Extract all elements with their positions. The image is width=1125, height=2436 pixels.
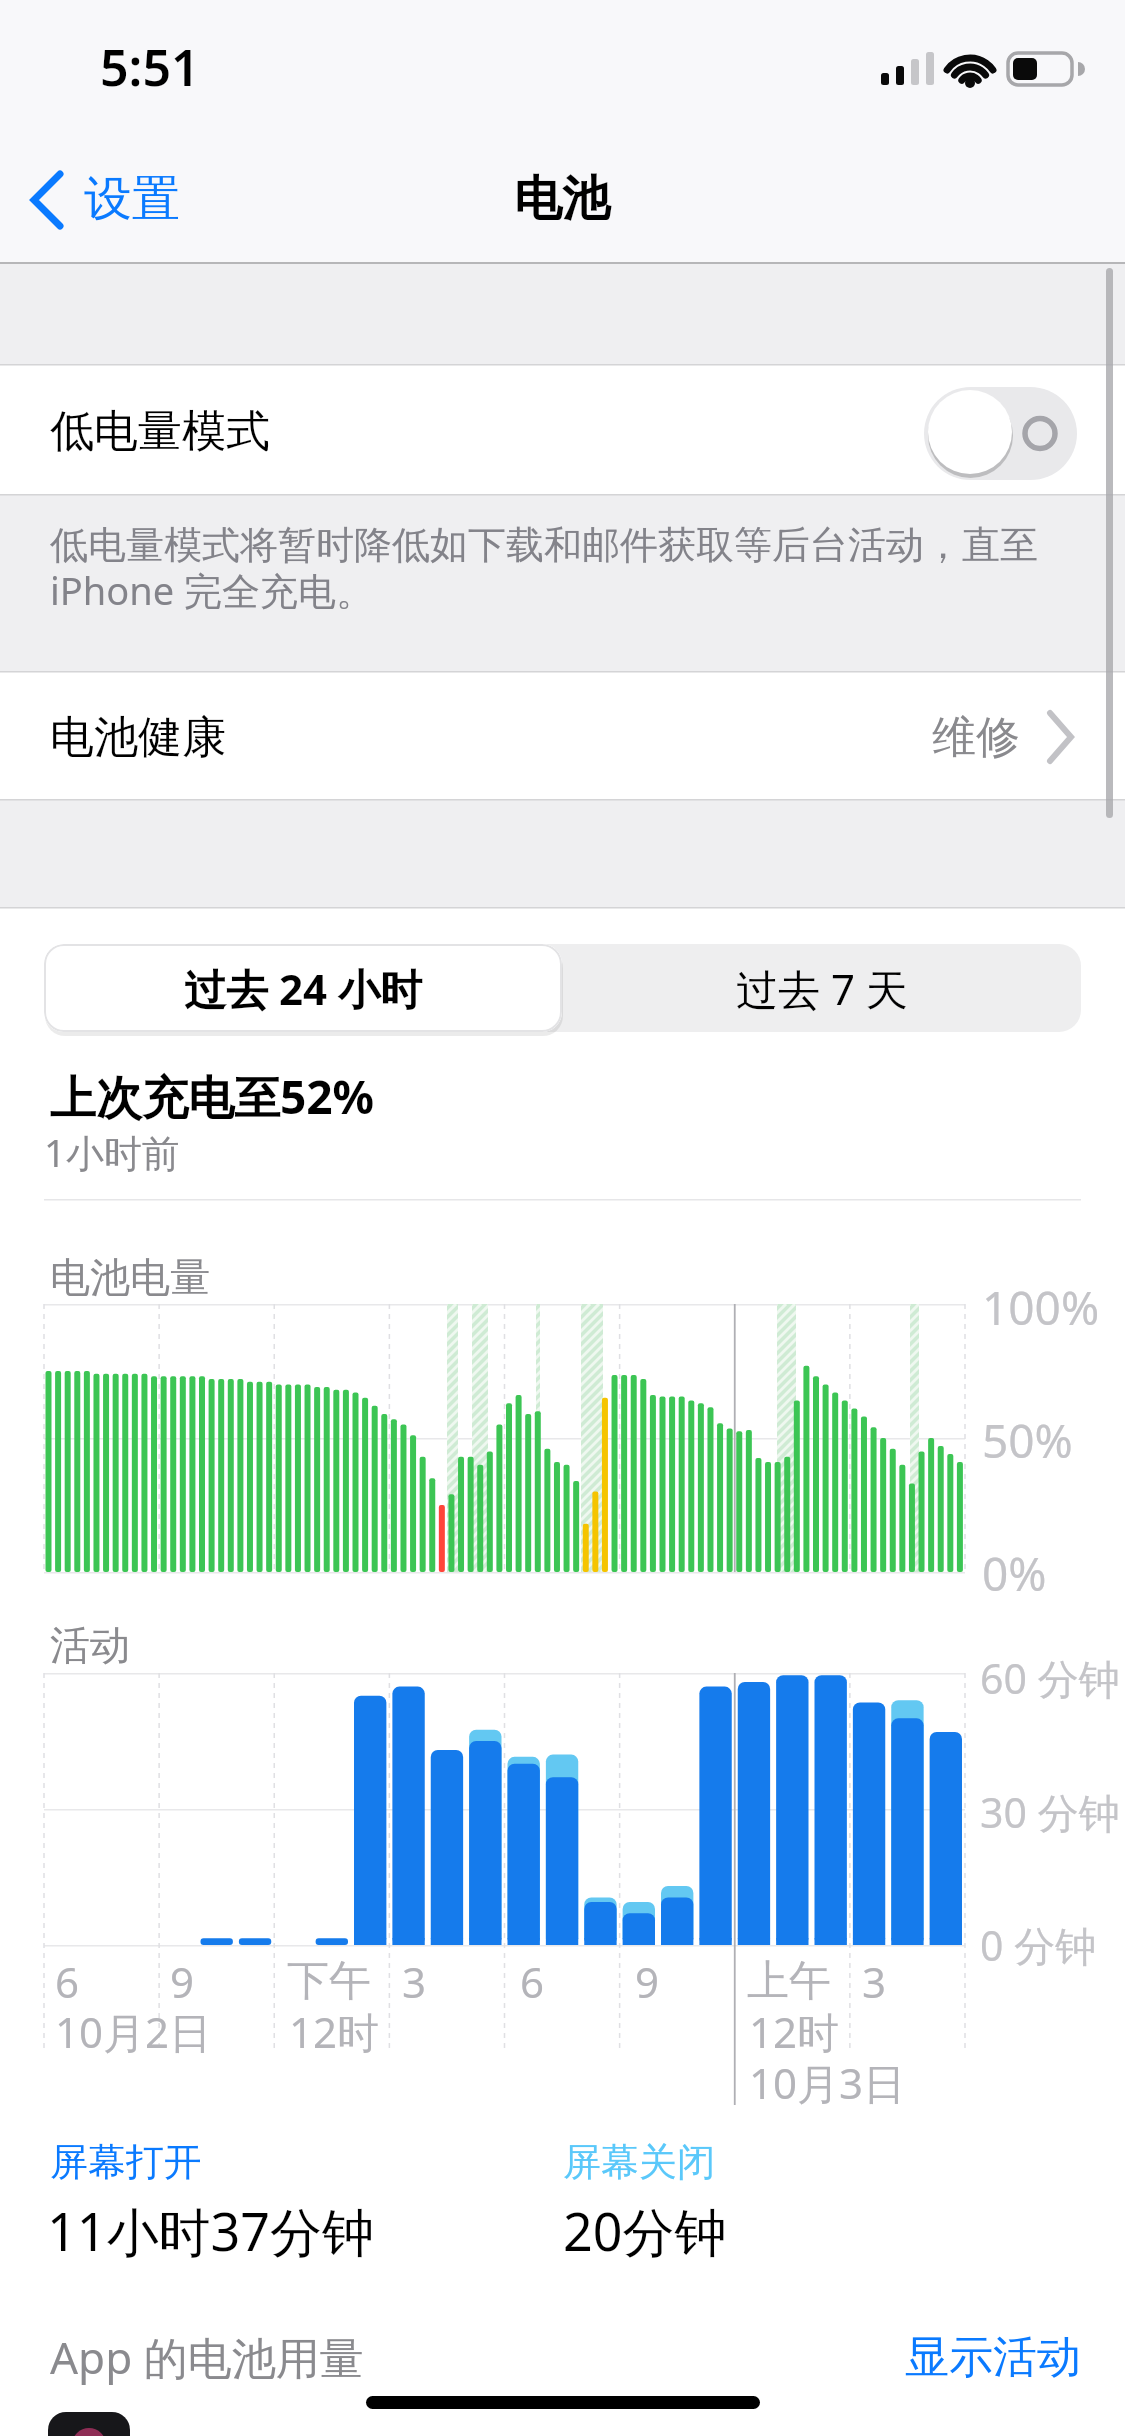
staticText: 过去 7 天 bbox=[736, 960, 908, 1017]
staticText: 设置 bbox=[84, 169, 180, 229]
staticText: 10月3日 bbox=[749, 2054, 906, 2111]
button[interactable]: 显示活动 bbox=[861, 2313, 1081, 2401]
staticText: 低电量模式将暂时降低如下载和邮件获取等后台活动，直至 iPhone 完全充电。 bbox=[50, 521, 1038, 616]
staticText: 11小时37分钟 bbox=[47, 2195, 374, 2266]
button[interactable] bbox=[0, 366, 1125, 494]
staticText: 1小时前 bbox=[44, 1126, 180, 1178]
staticText: 0% bbox=[982, 1542, 1047, 1605]
staticText: 12时 bbox=[289, 2003, 380, 2060]
button[interactable] bbox=[20, 160, 220, 240]
staticText: 9 bbox=[170, 1953, 195, 2010]
staticText: 下午 bbox=[287, 1955, 371, 2008]
staticText: 屏幕打开 bbox=[50, 2138, 202, 2186]
staticText: 显示活动 bbox=[905, 2330, 1081, 2385]
staticText: 10月2日 bbox=[55, 2003, 212, 2060]
staticText: 12时 bbox=[749, 2003, 840, 2060]
staticText: 屏幕关闭 bbox=[563, 2138, 715, 2186]
staticText: 低电量模式 bbox=[50, 404, 270, 459]
staticText: App 的电池用量 bbox=[50, 2327, 364, 2387]
staticText: 电池 bbox=[514, 169, 610, 229]
button[interactable] bbox=[0, 673, 1125, 799]
staticText: 5:51 bbox=[100, 33, 200, 101]
staticText: 0 分钟 bbox=[980, 1917, 1097, 1973]
button[interactable]: 过去 7 天 bbox=[562, 944, 1081, 1032]
button[interactable]: 过去 24 小时 bbox=[44, 944, 562, 1032]
staticText: 30 分钟 bbox=[980, 1784, 1120, 1840]
staticText: 活动 bbox=[50, 1620, 130, 1670]
staticText: 9 bbox=[635, 1953, 660, 2010]
staticText: 上午 bbox=[747, 1955, 831, 2008]
staticText: 3 bbox=[862, 1953, 887, 2010]
staticText: 50% bbox=[982, 1409, 1073, 1472]
staticText: 电池电量 bbox=[50, 1252, 210, 1302]
staticText: 上次充电至52% bbox=[50, 1065, 375, 1128]
staticText: 6 bbox=[55, 1953, 80, 2010]
button[interactable] bbox=[924, 387, 1077, 480]
staticText: 6 bbox=[520, 1953, 545, 2010]
staticText: 电池健康 bbox=[50, 710, 226, 765]
staticText: 60 分钟 bbox=[980, 1650, 1120, 1706]
staticText: 100% bbox=[982, 1276, 1100, 1339]
staticText: 3 bbox=[402, 1953, 427, 2010]
staticText: 20分钟 bbox=[563, 2195, 727, 2266]
staticText: 过去 24 小时 bbox=[184, 960, 422, 1017]
staticText: 维修 bbox=[932, 710, 1020, 765]
